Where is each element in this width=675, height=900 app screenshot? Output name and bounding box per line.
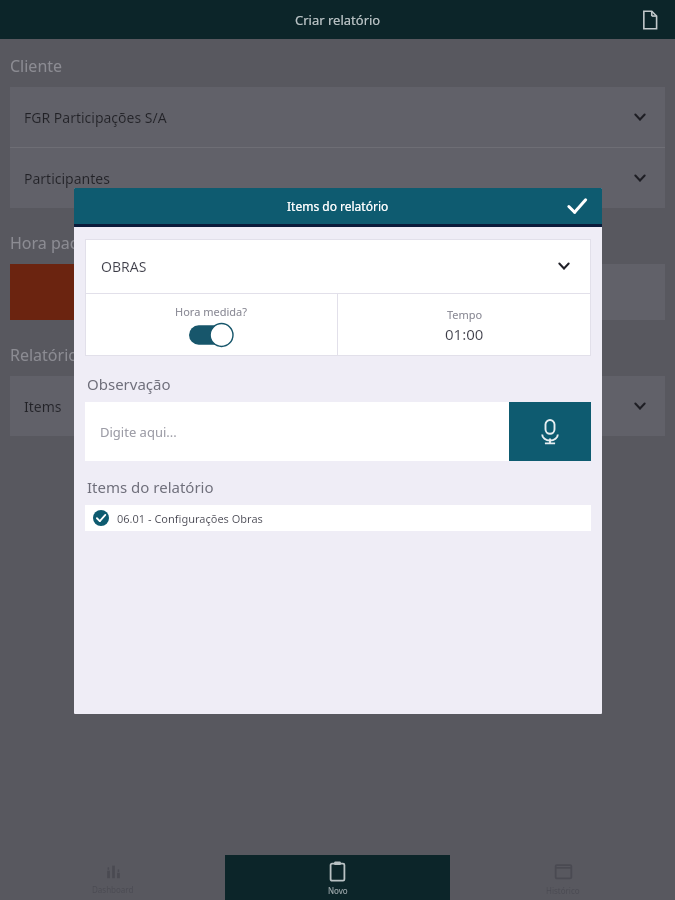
button[interactable]: Digite aqui... (85, 402, 509, 461)
staticText: Digite aqui... (100, 423, 177, 441)
staticText: Tempo (447, 307, 483, 322)
staticText: Hora medida? (175, 304, 247, 319)
staticText: Relatório (10, 344, 78, 366)
button[interactable]: Novo (225, 855, 450, 900)
button[interactable]: Hora medida (189, 324, 233, 346)
staticText: Items (24, 397, 62, 416)
button[interactable]: Gravar áudio (509, 402, 591, 461)
button[interactable]: Confirmar (562, 191, 592, 221)
staticText: 06.01 - Configurações Obras (117, 511, 263, 526)
button[interactable]: Tempo (338, 294, 591, 356)
staticText: OBRAS (101, 257, 147, 276)
staticText: Hora pactuada (10, 232, 121, 254)
staticText: Criar relatório (295, 11, 381, 29)
staticText: Cliente (10, 55, 63, 77)
staticText: 01:00 (445, 324, 484, 344)
button[interactable]: OBRAS (85, 239, 591, 293)
button[interactable]: 06.01 - Configurações Obras (85, 505, 591, 531)
staticText: Histórico (546, 885, 580, 896)
button[interactable]: Hora medida? (85, 294, 337, 356)
button[interactable]: Documento (633, 3, 667, 37)
button[interactable]: Participantes (10, 148, 665, 208)
button[interactable]: Items (10, 376, 665, 436)
staticText: Dashboard (92, 884, 134, 895)
staticText: Items do relatório (287, 198, 389, 214)
button[interactable]: FGR Participações S/A (10, 87, 665, 147)
staticText: Items do relatório (87, 477, 214, 497)
staticText: Novo (328, 885, 348, 896)
staticText: FGR Participações S/A (24, 108, 167, 127)
staticText: Participantes (24, 169, 110, 188)
staticText: Observação (87, 374, 171, 394)
